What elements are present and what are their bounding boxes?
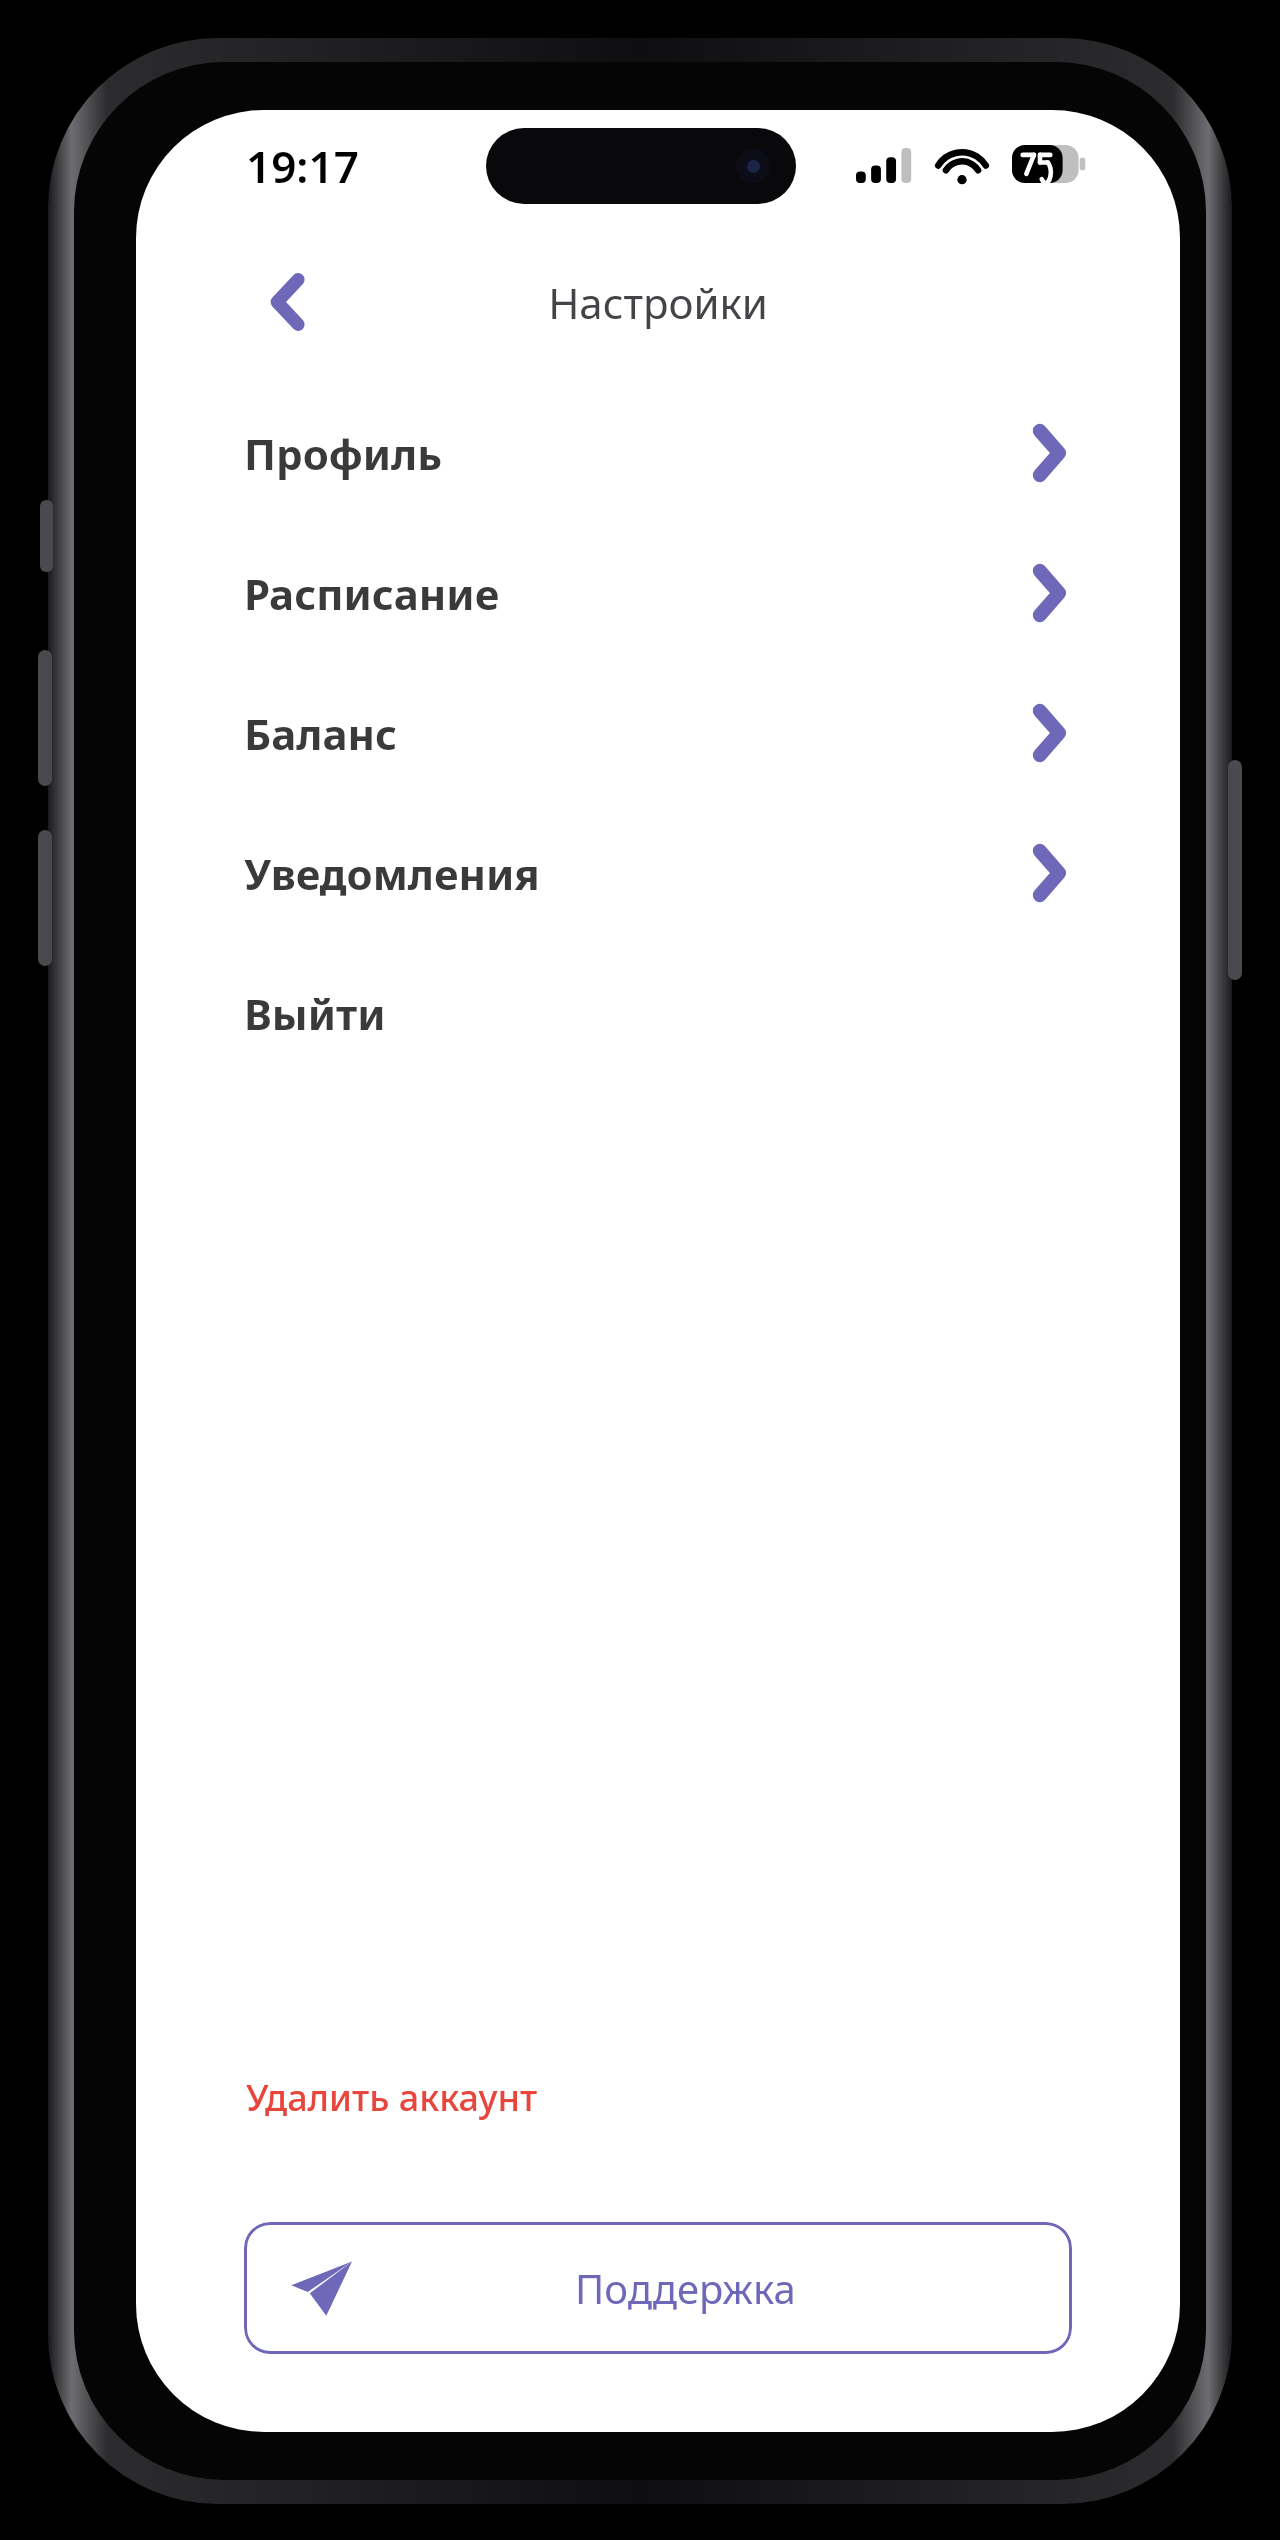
button[interactable]: Поддержка bbox=[244, 2222, 1072, 2354]
button[interactable]: Профиль bbox=[136, 410, 1180, 496]
staticText: Настройки bbox=[548, 274, 768, 331]
button[interactable]: Расписание bbox=[136, 550, 1180, 636]
button[interactable]: Выйти bbox=[136, 970, 1180, 1056]
staticText: Выйти bbox=[244, 985, 386, 1042]
button[interactable]: Back bbox=[254, 267, 324, 337]
staticText: Поддержка bbox=[575, 2261, 796, 2315]
button[interactable]: Удалить аккаунт bbox=[136, 2059, 1180, 2136]
button[interactable]: Уведомления bbox=[136, 830, 1180, 916]
staticText: Уведомления bbox=[244, 845, 540, 902]
staticText: Удалить аккаунт bbox=[246, 2073, 538, 2122]
staticText: Баланс bbox=[244, 705, 398, 762]
staticText: Профиль bbox=[244, 425, 443, 482]
staticText: 19:17 bbox=[246, 136, 359, 196]
staticText: Расписание bbox=[244, 565, 500, 622]
button[interactable]: Баланс bbox=[136, 690, 1180, 776]
